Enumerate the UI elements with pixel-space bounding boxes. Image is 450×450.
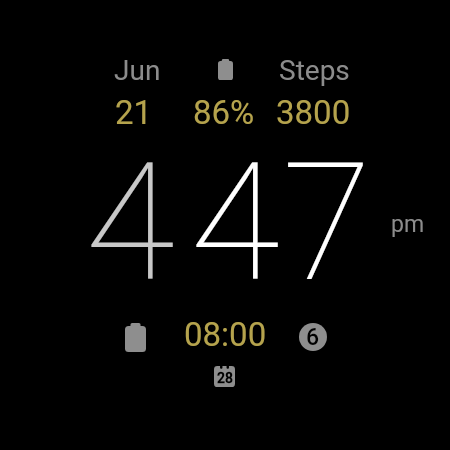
staticText: 4 [190, 127, 280, 319]
staticText: 7 [282, 127, 372, 319]
button[interactable]: Alarm 08:00 [180, 314, 270, 354]
button[interactable]: Jun [108, 50, 166, 130]
staticText: Steps [279, 54, 350, 87]
staticText: 28 [217, 370, 233, 386]
staticText: 86% [193, 93, 255, 132]
button[interactable]: Steps [272, 50, 354, 130]
staticText: 21 [115, 93, 153, 132]
staticText: 08:00 [184, 315, 267, 354]
button[interactable]: Calendar day 28 [211, 363, 238, 390]
staticText: 6 [306, 324, 320, 351]
button[interactable]: 4:47 pm [70, 150, 380, 290]
staticText: pm [391, 211, 425, 238]
staticText: 3800 [276, 93, 351, 132]
staticText: Jun [114, 54, 161, 87]
button[interactable]: Battery 86 percent [188, 50, 260, 130]
button[interactable]: 6 notifications [299, 323, 327, 351]
button[interactable]: Battery saver [115, 315, 155, 359]
staticText: 4 [85, 127, 175, 319]
